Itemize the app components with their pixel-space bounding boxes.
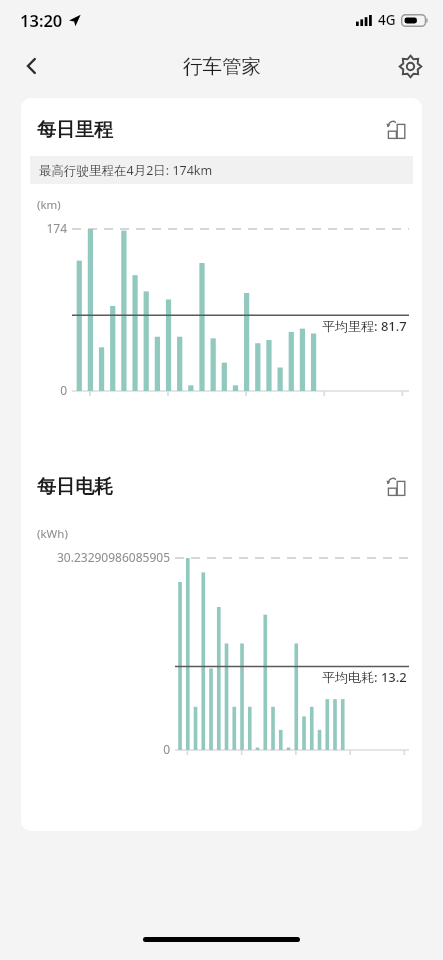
staticText: 最高行驶里程在4月2日: 174km bbox=[39, 162, 213, 179]
staticText: 4G bbox=[378, 11, 396, 29]
staticText: (kWh) bbox=[37, 526, 68, 542]
button[interactable]: Switch chart type bbox=[379, 113, 413, 147]
staticText: 平均里程: 81.7 bbox=[322, 317, 407, 335]
button[interactable]: Switch chart type bbox=[379, 470, 413, 504]
staticText: 174 bbox=[37, 220, 67, 236]
staticText: 每日电耗 bbox=[37, 475, 113, 499]
staticText: 平均电耗: 13.2 bbox=[322, 668, 407, 686]
staticText: 30.23290986085905 bbox=[37, 549, 170, 565]
staticText: 0 bbox=[37, 741, 170, 757]
staticText: 13:20 bbox=[20, 9, 63, 31]
button[interactable]: Back bbox=[10, 44, 54, 88]
button[interactable]: Settings bbox=[388, 44, 432, 88]
staticText: 行车管家 bbox=[183, 54, 261, 79]
staticText: 每日里程 bbox=[37, 118, 113, 142]
staticText: (km) bbox=[37, 197, 61, 213]
staticText: 0 bbox=[37, 382, 67, 398]
